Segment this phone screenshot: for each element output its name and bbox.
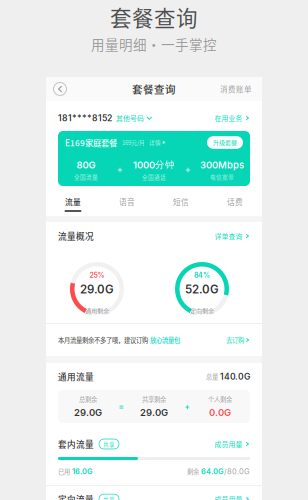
staticText: 本月流量剩余不多了哦，建议订购 [58,335,148,344]
staticText: 流量概况 [58,230,94,242]
staticText: 语音 [119,196,135,207]
staticText: 详情 [149,138,161,146]
button[interactable]: 返回 [48,77,72,101]
staticText: 1000分钟 [133,159,175,171]
staticText: 放心流量包 [150,335,180,344]
staticText: 29.0G [140,407,168,418]
staticText: 29.0G [74,407,102,418]
staticText: 16.0G [70,467,93,476]
staticText: 套内流量 [58,438,94,450]
staticText: 52.0G [185,282,219,296]
staticText: 84% [194,271,210,279]
button[interactable]: 语音 [100,190,154,216]
staticText: 去订购 [226,335,244,344]
staticText: 成员用量 [214,439,242,449]
staticText: 通用剩余 [85,306,109,315]
staticText: = [118,402,123,411]
button[interactable]: 详单查询 [214,225,250,247]
staticText: 其他号码 [116,113,144,123]
staticText: 64.0G [199,467,224,476]
staticText: 详单查询 [214,231,242,241]
button[interactable]: 去订购 [226,329,250,351]
staticText: 套餐查询 [110,1,198,32]
staticText: 流量 [65,196,81,207]
button[interactable]: 在用业务 [214,108,250,128]
staticText: 短信 [173,196,189,207]
button[interactable]: 成员用量 [214,488,250,500]
staticText: 已用 [58,467,70,476]
button[interactable]: 短信 [154,190,208,216]
staticText: 80G [76,159,95,171]
staticText: 29.0G [80,282,114,296]
staticText: 套餐查询 [132,81,176,97]
staticText: 升级套餐 [213,138,237,147]
staticText: 25% [89,271,104,279]
staticText: 140.0G [218,371,250,382]
button[interactable]: 话费 [208,190,262,216]
staticText: 个人剩余 [208,395,232,404]
staticText: 定向剩余 [190,306,214,315]
staticText: /80.0G [224,467,250,476]
button[interactable]: 消费账单 [220,77,252,101]
staticText: 通用流量 [58,370,94,383]
staticText: + [184,402,189,411]
staticText: 总量 [206,372,218,381]
staticText: 共享剩余 [142,395,166,404]
staticText: 共享 [103,495,115,500]
staticText: 电信宽带 [210,173,234,181]
staticText: 共享 [103,440,115,448]
staticText: 0.0G [209,407,231,418]
staticText: 全国通话 [142,173,166,181]
staticText: 用量明细·一手掌控 [91,34,217,54]
button[interactable]: 流量 [46,190,100,216]
button[interactable]: 成员用量 [214,433,250,455]
staticText: 181****8152 [58,113,112,123]
staticText: 话费 [227,196,243,207]
staticText: 在用业务 [214,113,242,123]
staticText: 300Mbps [200,159,244,171]
staticText: 总剩余 [79,395,97,404]
button[interactable]: 升级套餐 [207,136,243,149]
staticText: E169家庭套餐 [65,136,117,149]
staticText: 169元/月 [122,138,145,147]
button[interactable]: 其他号码 [112,108,153,128]
staticText: 消费账单 [220,84,252,94]
staticText: 全国流量 [74,173,98,181]
staticText: 成员用量 [214,494,242,500]
staticText: 剩余 [187,467,199,476]
staticText: 定向流量 [58,493,94,500]
